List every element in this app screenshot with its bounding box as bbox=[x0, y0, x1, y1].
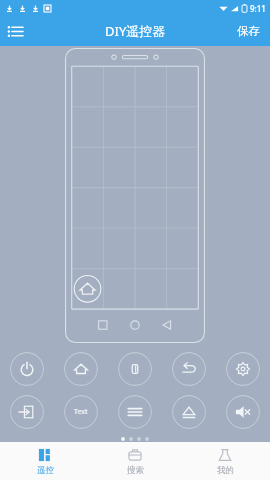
button[interactable]: Menu bbox=[0, 16, 30, 46]
button[interactable]: Home bbox=[64, 352, 98, 386]
button[interactable]: App bbox=[118, 352, 152, 386]
button[interactable]: 保存 bbox=[227, 16, 270, 46]
button[interactable]: 我的 bbox=[180, 442, 270, 480]
button[interactable]: Menu bbox=[118, 395, 152, 429]
staticText: 9:11 bbox=[250, 3, 266, 14]
button[interactable]: Input bbox=[10, 395, 44, 429]
staticText: 我的 bbox=[217, 465, 234, 476]
staticText: 遥控 bbox=[37, 465, 54, 476]
button[interactable]: 遥控 bbox=[0, 442, 90, 480]
staticText: DIY遥控器 bbox=[105, 22, 166, 40]
button[interactable]: Power bbox=[10, 352, 44, 386]
button[interactable]: Settings bbox=[226, 352, 260, 386]
button[interactable]: Mute bbox=[226, 395, 260, 429]
staticText: 保存 bbox=[237, 24, 260, 38]
staticText: 搜索 bbox=[127, 465, 144, 476]
staticText: Text bbox=[74, 407, 88, 417]
button[interactable]: Eject bbox=[172, 395, 206, 429]
button[interactable]: Back bbox=[172, 352, 206, 386]
button[interactable]: 搜索 bbox=[90, 442, 180, 480]
button[interactable]: Text bbox=[64, 395, 98, 429]
